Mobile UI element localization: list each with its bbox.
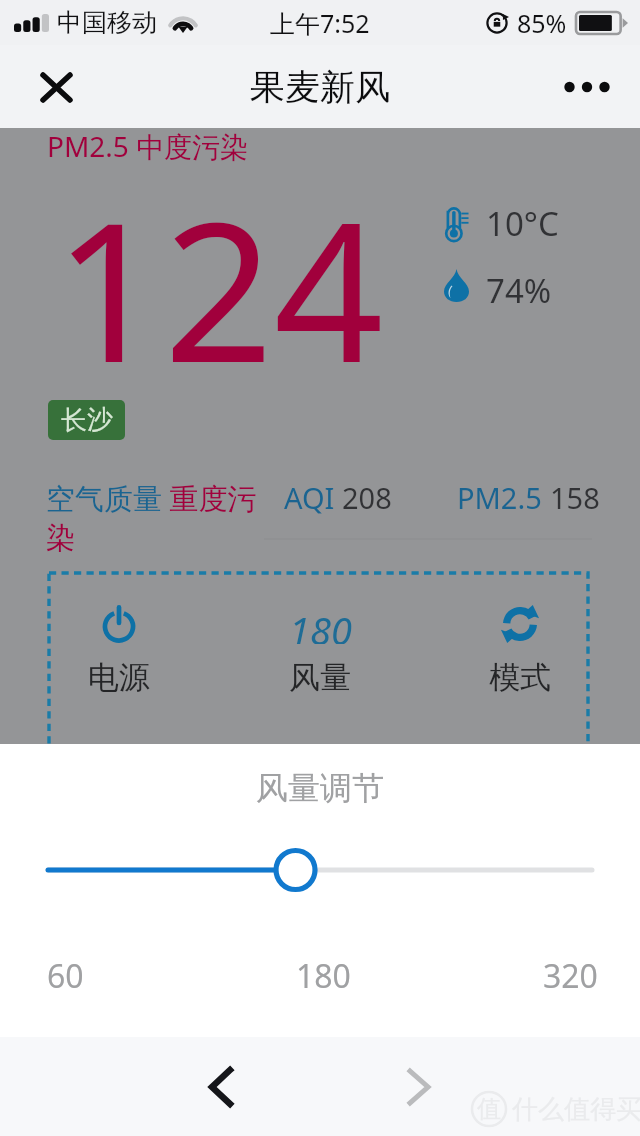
button[interactable]: 长沙 (48, 400, 125, 440)
staticText: PM2.5 (457, 478, 550, 517)
button[interactable]: Back (190, 1053, 252, 1121)
staticText: 180 (289, 604, 352, 644)
staticText: 果麦新风 (250, 65, 390, 109)
button[interactable]: Fan speed slider (48, 840, 592, 900)
staticText: PM2.5 中度污染 (47, 127, 249, 165)
staticText: 风量调节 (0, 768, 640, 808)
staticText: 值 (477, 1094, 501, 1124)
button[interactable]: Forward (388, 1053, 450, 1121)
staticText: 上午7:52 (270, 6, 370, 40)
staticText: 中国移动 (57, 7, 157, 38)
button[interactable]: Close (30, 61, 82, 113)
staticText: 空气质量 重度污染 (46, 478, 282, 557)
staticText: 124 (54, 157, 384, 419)
button[interactable]: More options (555, 55, 619, 119)
button[interactable]: 电源 (64, 573, 174, 708)
staticText: 180 (296, 954, 351, 998)
staticText: 320 (543, 954, 598, 998)
staticText: 74% (486, 268, 552, 313)
staticText: 208 (342, 478, 392, 517)
staticText: AQI (284, 478, 342, 517)
staticText: 风量 (289, 658, 351, 697)
staticText: 长沙 (61, 404, 113, 437)
button[interactable]: 模式 (465, 573, 575, 708)
staticText: 158 (550, 478, 600, 517)
staticText: 模式 (489, 658, 551, 697)
staticText: 什么值得买 (512, 1093, 640, 1126)
staticText: 60 (47, 954, 84, 998)
button[interactable]: 180 (265, 573, 375, 708)
staticText: 10°C (486, 201, 559, 246)
staticText: 电源 (88, 658, 150, 697)
staticText: 85% (517, 6, 567, 40)
